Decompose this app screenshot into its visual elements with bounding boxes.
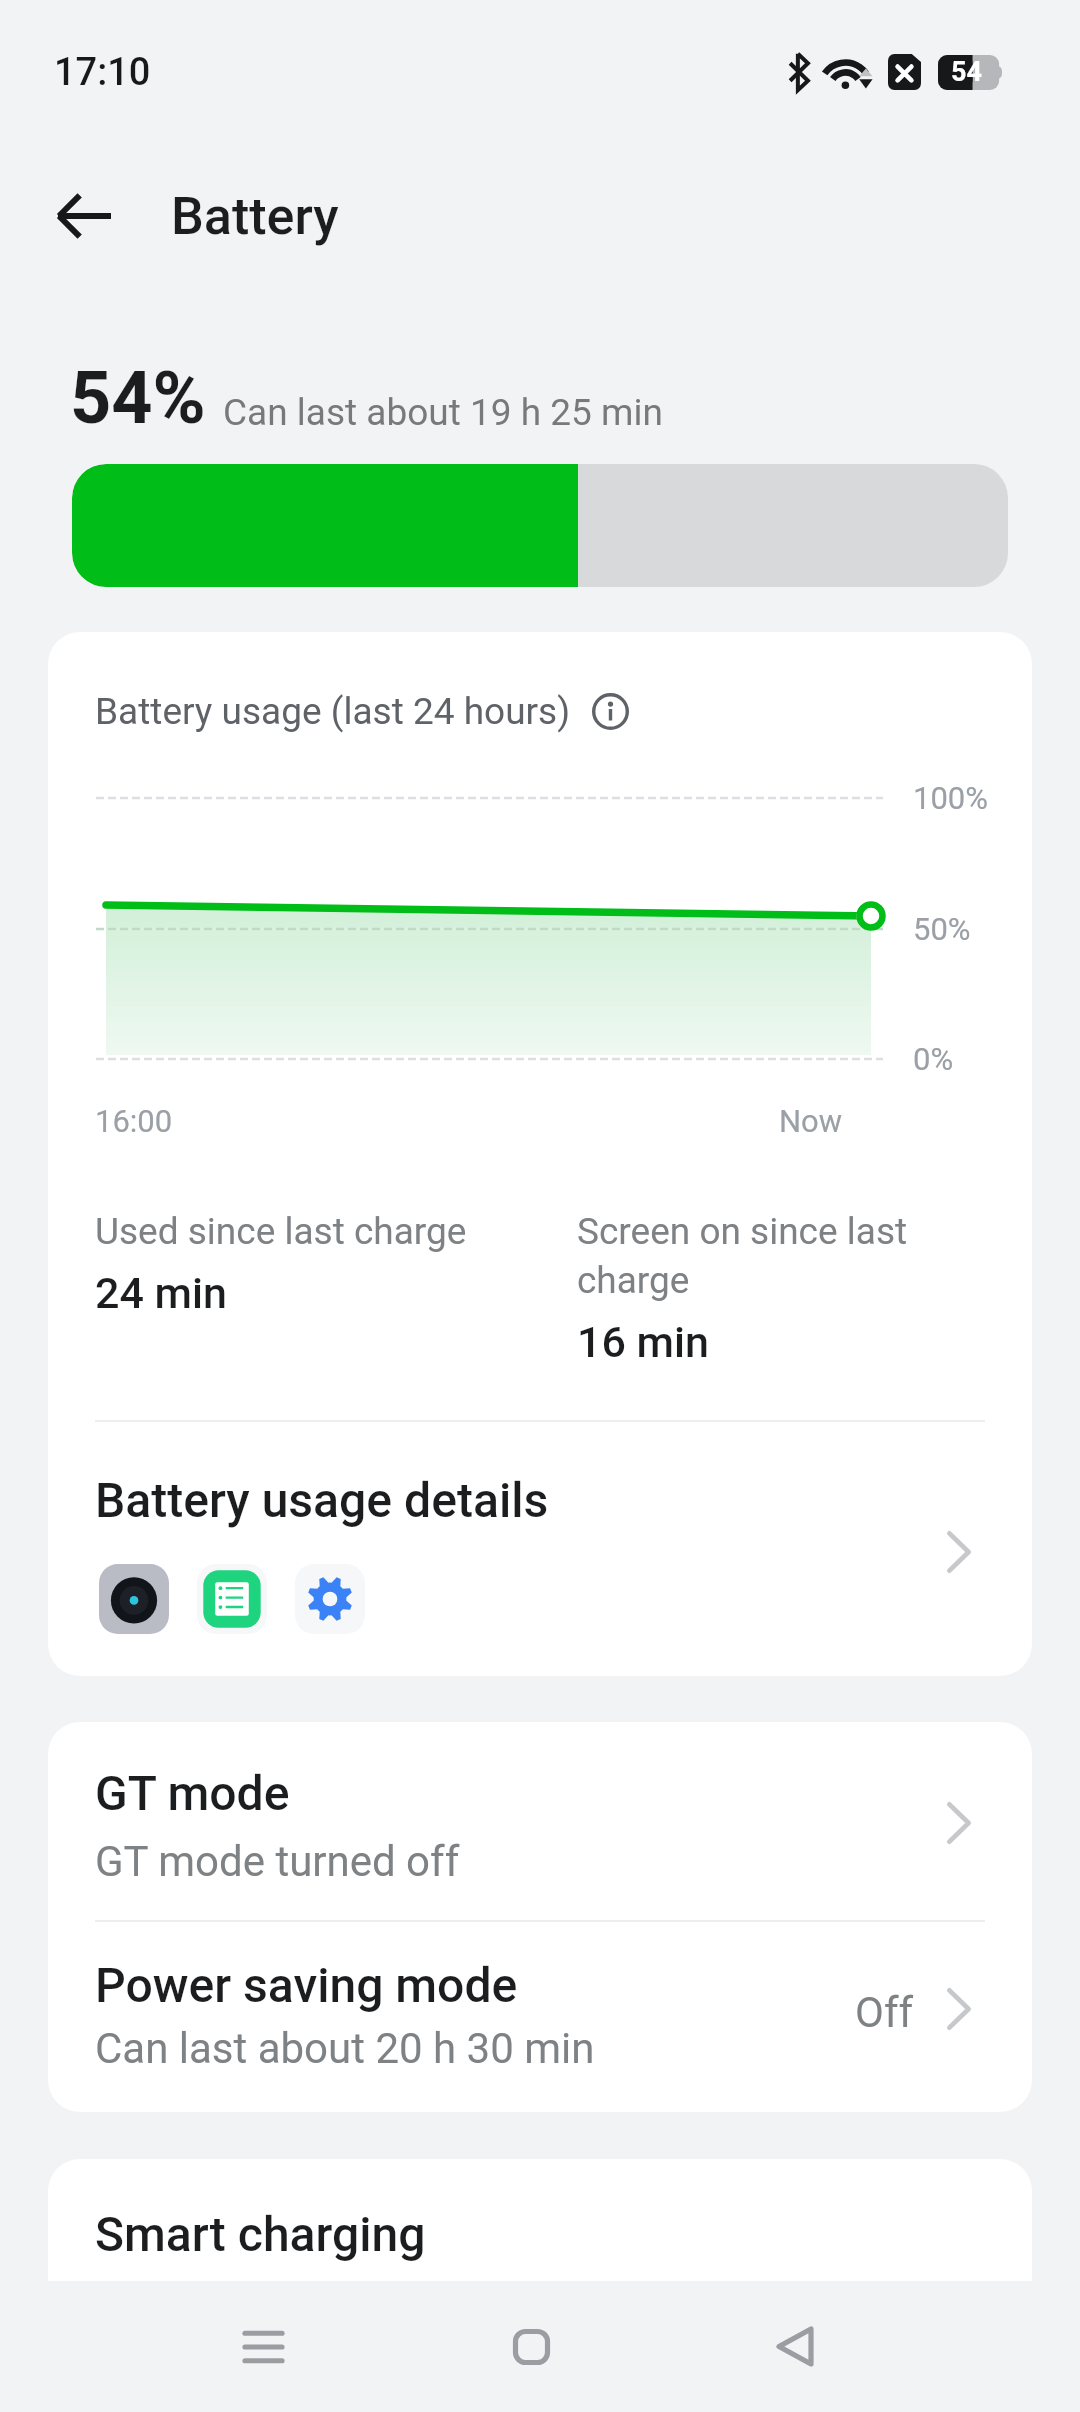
staticText: 100%: [913, 780, 988, 816]
button[interactable]: Battery usage details: [48, 1422, 1032, 1676]
staticText: Now: [779, 1103, 843, 1139]
staticText: 24 min: [95, 1268, 227, 1318]
button[interactable]: Back: [40, 172, 128, 260]
staticText: Can last about 20 h 30 min: [95, 2024, 595, 2073]
staticText: Smart charging: [95, 2206, 426, 2262]
staticText: 54: [951, 56, 982, 88]
staticText: Used since last charge: [95, 1205, 467, 1254]
staticText: Battery usage (last 24 hours): [95, 690, 571, 733]
staticText: Smart charging turned on: [95, 2278, 570, 2327]
staticText: Can last about 19 h 25 min: [223, 391, 663, 434]
staticText: 17:10: [54, 50, 151, 95]
button[interactable]: GT mode: [48, 1722, 1032, 1920]
staticText: Battery: [171, 186, 339, 247]
button[interactable]: Back: [728, 2281, 862, 2412]
staticText: Screen on since last charge: [577, 1205, 922, 1303]
button[interactable]: Home: [464, 2281, 598, 2412]
button[interactable]: Recent apps: [196, 2281, 330, 2412]
staticText: GT mode: [95, 1765, 290, 1821]
staticText: Power saving mode: [95, 1957, 518, 2013]
button[interactable]: Power saving mode: [48, 1922, 1032, 2112]
button[interactable]: Smart charging: [48, 2159, 1032, 2357]
staticText: GT mode turned off: [95, 1837, 460, 1886]
staticText: 16:00: [95, 1103, 173, 1139]
staticText: 54%: [70, 356, 206, 440]
staticText: 16 min: [577, 1317, 709, 1367]
staticText: 0%: [913, 1041, 954, 1077]
staticText: 50%: [913, 911, 971, 947]
staticText: Battery usage details: [95, 1472, 549, 1528]
staticText: Off: [855, 1988, 914, 2037]
